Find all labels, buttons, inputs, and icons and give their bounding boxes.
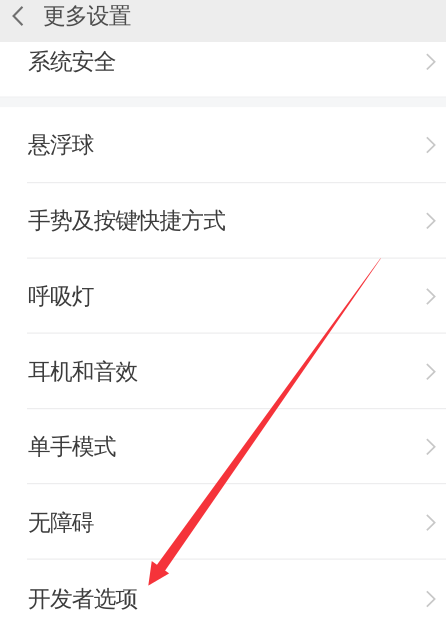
staticText: 耳机和音效	[28, 358, 139, 386]
staticText: 更多设置	[43, 2, 132, 30]
staticText: 呼吸灯	[28, 283, 95, 310]
staticText: 系统安全	[28, 48, 117, 76]
button[interactable]: 系统安全	[0, 42, 446, 97]
button[interactable]: 呼吸灯	[0, 257, 446, 332]
button[interactable]: 悬浮球	[0, 107, 446, 182]
staticText: 开发者选项	[28, 585, 139, 613]
button[interactable]: 手势及按键快捷方式	[0, 182, 446, 257]
button[interactable]: Back	[1, 0, 35, 32]
staticText: 无障碍	[28, 509, 95, 536]
staticText: 悬浮球	[28, 131, 95, 159]
staticText: 手势及按键快捷方式	[28, 207, 226, 235]
button[interactable]: 单手模式	[0, 408, 446, 483]
button[interactable]: 开发者选项	[0, 558, 446, 624]
button[interactable]: 耳机和音效	[0, 332, 446, 408]
staticText: 单手模式	[28, 433, 117, 461]
button[interactable]: 无障碍	[0, 483, 446, 558]
